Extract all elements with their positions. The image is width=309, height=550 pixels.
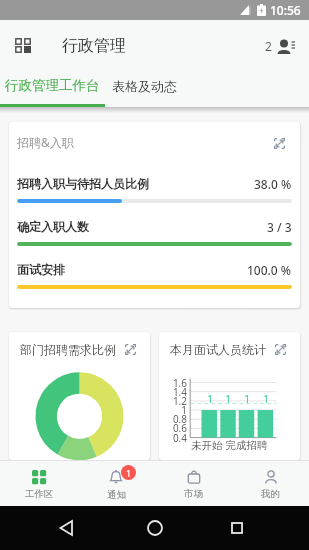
button[interactable] — [15, 38, 32, 53]
staticText: 我的 — [261, 488, 280, 500]
staticText: 0.4 — [169, 431, 187, 445]
button[interactable]: 工作区 — [0, 461, 78, 506]
staticText: 100.0 % — [247, 262, 292, 276]
staticText: 面试安排 — [17, 262, 65, 276]
staticText: 本月面试人员统计 — [170, 342, 266, 357]
staticText: 行政管理 — [62, 36, 126, 56]
staticText: 2 — [265, 38, 272, 54]
staticText: 工作区 — [25, 488, 54, 500]
button[interactable]: 表格及动态 — [105, 64, 183, 107]
staticText: 1 — [169, 403, 187, 417]
button[interactable] — [59, 520, 73, 536]
staticText: 招聘&入职 — [17, 134, 74, 150]
button[interactable]: 招聘&入职 — [9, 122, 300, 308]
staticText: 市场 — [184, 488, 203, 500]
button[interactable] — [147, 520, 163, 536]
button[interactable]: 我的 — [232, 461, 309, 506]
button[interactable]: 市场 — [155, 461, 232, 506]
staticText: 确定入职人数 — [17, 219, 89, 233]
staticText: 行政管理工作台 — [5, 77, 100, 94]
staticText: 38.0 % — [254, 176, 292, 190]
staticText: 3 / 3 — [267, 219, 292, 233]
staticText: 1 — [220, 392, 236, 406]
staticText: 通知 — [107, 489, 126, 501]
staticText: 1.6 — [169, 376, 187, 390]
staticText: 招聘入职与待招人员比例 — [17, 176, 149, 190]
button[interactable] — [231, 522, 243, 534]
staticText: 1.4 — [169, 385, 187, 399]
staticText: 0.6 — [169, 421, 187, 435]
staticText: 1 — [126, 467, 132, 479]
staticText: 1.2 — [169, 394, 187, 408]
staticText: 未开始 完成招聘 — [191, 438, 268, 452]
button[interactable]: 本月面试人员统计 — [159, 332, 300, 460]
staticText: 1 — [202, 392, 218, 406]
staticText: 1 — [239, 392, 255, 406]
button[interactable]: 1 — [78, 461, 155, 506]
button[interactable]: 2 — [265, 38, 295, 54]
staticText: 部门招聘需求比例 — [20, 342, 116, 357]
staticText: 10:56 — [270, 2, 301, 18]
staticText: 1 — [258, 392, 274, 406]
button[interactable]: 行政管理工作台 — [0, 64, 105, 107]
staticText: 表格及动态 — [112, 78, 177, 94]
button[interactable]: 部门招聘需求比例 — [9, 332, 150, 460]
staticText: 0.8 — [169, 412, 187, 426]
